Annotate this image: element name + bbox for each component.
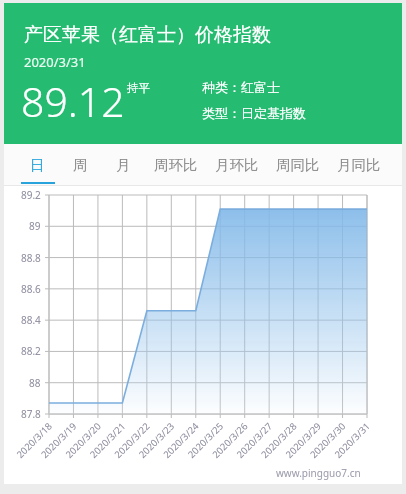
staticText: 周 xyxy=(73,156,88,174)
staticText: 周同比 xyxy=(276,156,320,174)
staticText: 89.12 xyxy=(21,73,125,129)
button[interactable]: 周 xyxy=(59,144,102,186)
button[interactable]: 周同比 xyxy=(267,144,328,186)
staticText: 日 xyxy=(30,156,45,174)
staticText: 月 xyxy=(116,156,131,174)
staticText: 2020/3/31 xyxy=(24,53,86,71)
staticText: 周环比 xyxy=(154,156,198,174)
staticText: 产区苹果（红富士）价格指数 xyxy=(24,23,271,47)
staticText: 月环比 xyxy=(215,156,259,174)
button[interactable]: 月环比 xyxy=(206,144,267,186)
staticText: 持平 xyxy=(127,81,150,95)
staticText: 月同比 xyxy=(337,156,381,174)
button[interactable]: 日 xyxy=(16,144,59,186)
button[interactable]: 月 xyxy=(102,144,145,186)
button[interactable]: 周环比 xyxy=(145,144,206,186)
staticText: 种类：红富士 xyxy=(202,79,280,95)
button[interactable]: 月同比 xyxy=(328,144,389,186)
staticText: 类型：日定基指数 xyxy=(202,105,306,121)
